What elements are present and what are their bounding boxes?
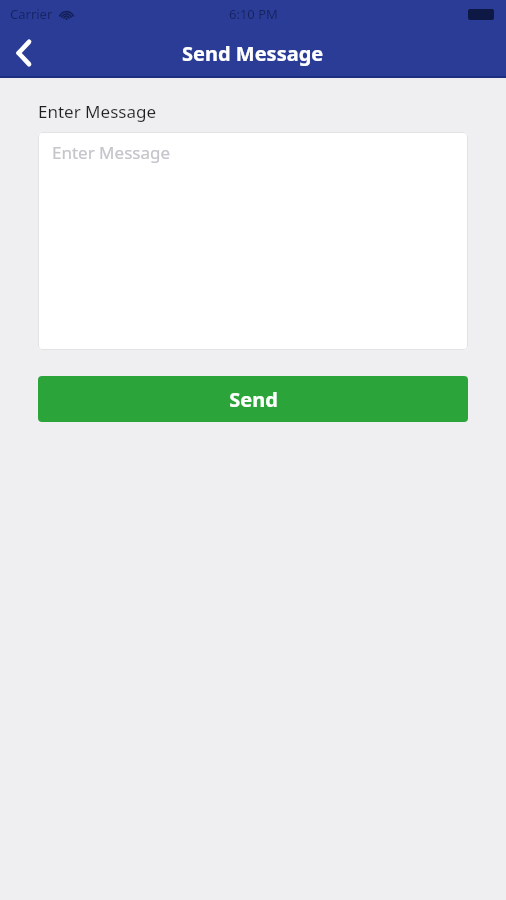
staticText: Enter Message — [52, 141, 170, 164]
staticText: Enter Message — [38, 100, 156, 123]
staticText: 6:10 PM — [229, 5, 278, 23]
staticText: Send Message — [182, 40, 324, 67]
staticText: Carrier — [10, 5, 53, 23]
button[interactable]: Back — [0, 29, 48, 77]
staticText: Send — [229, 386, 278, 413]
button[interactable]: Send — [38, 376, 468, 422]
button[interactable]: Enter Message — [38, 132, 468, 350]
